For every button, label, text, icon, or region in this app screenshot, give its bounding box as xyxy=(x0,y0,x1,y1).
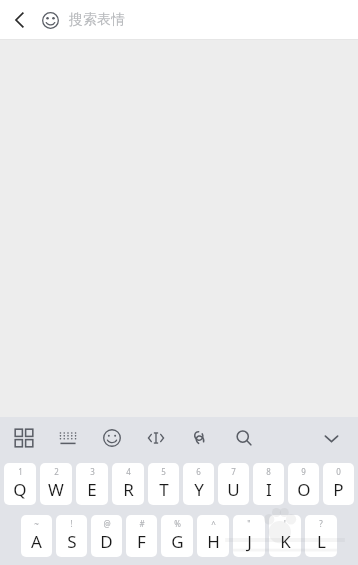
button[interactable]: 6 xyxy=(183,463,214,505)
staticText: @ xyxy=(103,518,111,529)
staticText: 3 xyxy=(90,466,95,477)
staticText: ^ xyxy=(211,518,216,529)
button[interactable]: ~ xyxy=(21,515,52,557)
staticText: 0 xyxy=(336,466,341,477)
button[interactable]: " xyxy=(233,515,265,557)
button[interactable]: 9 xyxy=(288,463,319,505)
staticText: ! xyxy=(70,518,73,529)
button[interactable]: ? xyxy=(305,515,337,557)
button[interactable]: Emoji xyxy=(38,8,62,32)
button[interactable]: Move cursor xyxy=(142,424,170,452)
staticText: P xyxy=(333,478,344,501)
staticText: 搜索表情 xyxy=(69,11,125,29)
staticText: I xyxy=(266,478,272,501)
staticText: W xyxy=(48,478,64,501)
staticText: ~ xyxy=(34,518,39,529)
button[interactable]: ^ xyxy=(197,515,229,557)
button[interactable]: Emoji xyxy=(98,424,126,452)
staticText: J xyxy=(247,530,252,553)
button[interactable]: 1 xyxy=(4,463,36,505)
staticText: R xyxy=(123,478,134,501)
button[interactable]: ! xyxy=(56,515,87,557)
staticText: # xyxy=(139,518,145,529)
staticText: 5 xyxy=(161,466,166,477)
button[interactable]: ' xyxy=(269,515,301,557)
button[interactable]: 3 xyxy=(76,463,108,505)
button[interactable]: % xyxy=(161,515,193,557)
button[interactable]: Keyboard xyxy=(54,424,82,452)
button[interactable]: 0 xyxy=(323,463,354,505)
button[interactable]: 2 xyxy=(40,463,72,505)
button[interactable]: Clipboard xyxy=(186,424,214,452)
staticText: Y xyxy=(194,478,204,501)
staticText: A xyxy=(31,530,42,553)
staticText: U xyxy=(227,478,240,501)
button[interactable]: 7 xyxy=(218,463,249,505)
button[interactable]: @ xyxy=(91,515,122,557)
staticText: D xyxy=(100,530,113,553)
staticText: 2 xyxy=(54,466,59,477)
button[interactable]: Panels xyxy=(10,424,38,452)
staticText: S xyxy=(67,530,77,553)
staticText: 6 xyxy=(196,466,201,477)
button[interactable]: 4 xyxy=(112,463,144,505)
staticText: O xyxy=(297,478,311,501)
staticText: F xyxy=(137,530,146,553)
staticText: G xyxy=(171,530,184,553)
staticText: " xyxy=(247,518,251,529)
staticText: ? xyxy=(319,518,323,529)
staticText: 8 xyxy=(266,466,271,477)
staticText: % xyxy=(174,518,181,529)
staticText: ' xyxy=(284,518,286,529)
button[interactable]: Back xyxy=(4,4,36,36)
staticText: T xyxy=(159,478,169,501)
button[interactable]: Hide keyboard xyxy=(316,423,346,453)
staticText: Q xyxy=(13,478,27,501)
staticText: E xyxy=(87,478,97,501)
button[interactable]: Search xyxy=(230,424,258,452)
staticText: 9 xyxy=(301,466,306,477)
button[interactable]: 8 xyxy=(253,463,284,505)
button[interactable]: 5 xyxy=(148,463,179,505)
staticText: L xyxy=(317,530,326,553)
staticText: H xyxy=(207,530,220,553)
staticText: 4 xyxy=(126,466,131,477)
button[interactable]: # xyxy=(126,515,157,557)
staticText: 1 xyxy=(18,466,23,477)
staticText: K xyxy=(280,530,291,553)
staticText: 7 xyxy=(231,466,236,477)
